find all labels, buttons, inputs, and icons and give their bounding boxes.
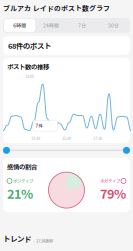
staticText: 13:30	[31, 135, 40, 141]
staticText: ポスト数の推移	[7, 62, 49, 71]
staticText: 68件のポスト	[8, 40, 51, 51]
staticText: 7件	[35, 122, 43, 129]
staticText: 79%	[100, 184, 126, 202]
staticText: ネガティブ	[100, 178, 120, 184]
staticText: 感情の割合	[7, 162, 37, 171]
staticText: 7日	[78, 22, 86, 29]
button[interactable]: 6時間	[4, 19, 35, 32]
staticText: 24時間	[43, 22, 59, 29]
staticText: ポジティブ	[13, 178, 33, 184]
staticText: トレンド	[3, 233, 31, 244]
staticText: · 17:34更新	[33, 238, 53, 244]
staticText: 30日	[108, 22, 119, 29]
button[interactable]: 24時間	[35, 19, 66, 32]
staticText: 6時間	[13, 22, 26, 29]
button[interactable]: 30日	[98, 19, 129, 32]
staticText: 15:30	[62, 135, 71, 141]
staticText: 21%	[7, 184, 33, 202]
staticText: 13:05	[25, 73, 34, 79]
staticText: 17:30	[93, 135, 102, 141]
staticText: ブルアカ レイドのポスト数グラフ	[3, 3, 110, 13]
button[interactable]: 7日	[66, 19, 98, 32]
